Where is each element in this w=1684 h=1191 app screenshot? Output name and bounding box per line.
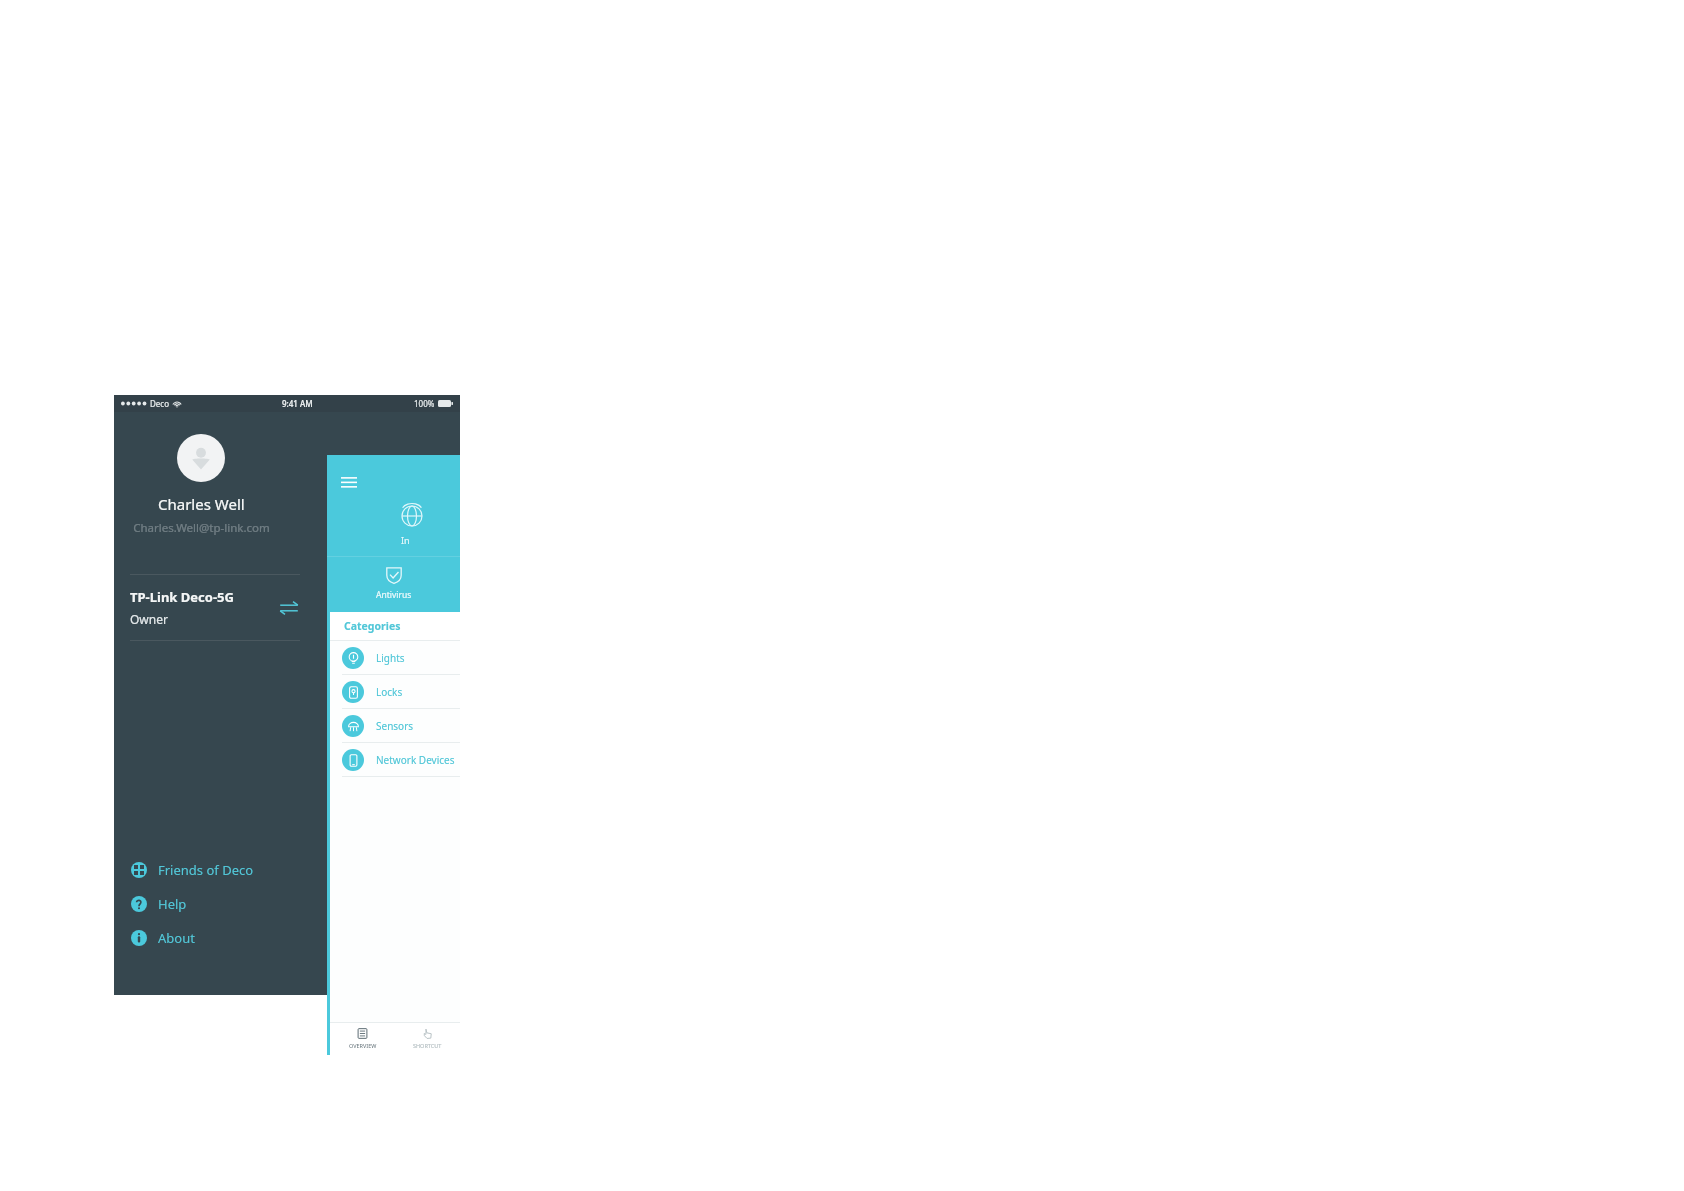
staticText: Owner (130, 611, 168, 627)
staticText: 9:41 AM (282, 398, 313, 409)
staticText: Lights (376, 651, 405, 665)
button[interactable]: TP-Link Deco-5G (114, 575, 310, 640)
staticText: Friends of Deco (158, 861, 254, 879)
button[interactable]: Network Devices (330, 743, 460, 776)
staticText: Locks (376, 685, 403, 699)
staticText: Deco (150, 398, 170, 409)
staticText: OVERVIEW (349, 1042, 377, 1049)
staticText: SHORTCUT (413, 1042, 442, 1049)
staticText: In (401, 534, 410, 546)
button[interactable]: OVERVIEW (330, 1023, 395, 1055)
button[interactable]: Menu (339, 473, 359, 493)
button[interactable]: About (114, 921, 460, 955)
button[interactable]: SHORTCUT (395, 1023, 460, 1055)
other: Switch network (278, 597, 300, 619)
staticText: Categories (344, 619, 401, 633)
button[interactable]: Friends of Deco (114, 853, 460, 887)
button[interactable]: Help (114, 887, 460, 921)
button[interactable]: Sensors (330, 709, 460, 742)
button[interactable]: Locks (330, 675, 460, 708)
button[interactable]: In (327, 505, 460, 546)
staticText: Charles Well (158, 494, 245, 514)
button[interactable]: Lights (330, 641, 460, 674)
staticText: About (158, 929, 195, 947)
staticText: Help (158, 895, 187, 913)
staticText: Network Devices (376, 753, 455, 767)
staticText: 100% (414, 398, 435, 409)
staticText: Sensors (376, 719, 414, 733)
staticText: Antivirus (376, 589, 412, 601)
button[interactable]: Antivirus (327, 566, 460, 601)
staticText: TP-Link Deco-5G (130, 588, 234, 606)
staticText: Charles.Well@tp-link.com (133, 520, 270, 536)
